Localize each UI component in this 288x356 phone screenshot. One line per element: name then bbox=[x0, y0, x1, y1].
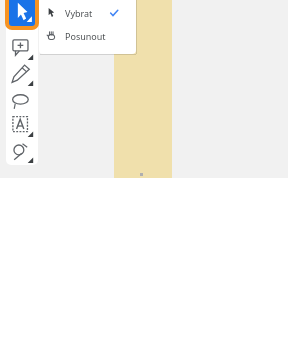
staticText: Posunout bbox=[65, 30, 106, 42]
button[interactable]: Výběr textu bbox=[9, 113, 35, 139]
button[interactable]: Razítko bbox=[9, 139, 35, 165]
button[interactable]: Laso bbox=[9, 88, 35, 114]
button[interactable]: Posunout bbox=[39, 24, 136, 47]
button[interactable]: Pero bbox=[9, 62, 35, 88]
button[interactable]: Přidat komentář bbox=[9, 36, 35, 62]
staticText: Vybrat bbox=[65, 7, 93, 19]
button[interactable]: Vybrat bbox=[39, 1, 136, 24]
button[interactable]: Vybrat (aktivní nástroj) bbox=[5, 0, 39, 30]
